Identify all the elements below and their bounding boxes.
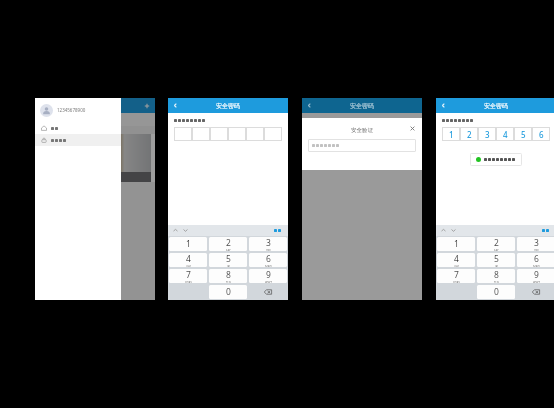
button[interactable]: Backspace: [517, 285, 554, 299]
staticText: DEF: [534, 249, 539, 251]
button[interactable]: Next field: [450, 227, 457, 234]
button[interactable]: 1: [169, 237, 207, 251]
staticText: 2: [494, 237, 499, 249]
button[interactable]: 6: [532, 127, 550, 141]
button[interactable]: Previous field: [440, 227, 447, 234]
button[interactable]: 1: [437, 237, 475, 251]
button[interactable]: 9: [517, 269, 554, 283]
staticText: 4: [186, 253, 191, 265]
staticText: 2: [226, 237, 231, 249]
staticText: 安全密码: [350, 102, 374, 110]
staticText: 0: [226, 286, 231, 298]
button[interactable]: 0: [209, 285, 247, 299]
staticText: MNO: [265, 265, 272, 267]
staticText: 4: [454, 253, 459, 265]
staticText: WXYZ: [265, 281, 272, 283]
button[interactable]: 2: [477, 237, 515, 251]
button[interactable]: Back: [302, 98, 316, 113]
staticText: 0: [494, 286, 499, 298]
button[interactable]: Back: [168, 98, 182, 113]
button[interactable]: 8: [209, 269, 247, 283]
button[interactable]: 4: [437, 253, 475, 267]
button[interactable]: [264, 127, 282, 141]
button[interactable]: Next field: [182, 227, 189, 234]
staticText: TUV: [494, 281, 499, 283]
button[interactable]: [540, 228, 552, 233]
staticText: WXYZ: [533, 281, 540, 283]
button[interactable]: 6: [517, 253, 554, 267]
staticText: 安全验证: [351, 127, 373, 134]
staticText: 3: [266, 237, 271, 249]
staticText: TUV: [226, 281, 231, 283]
button[interactable]: 4: [496, 127, 514, 141]
button[interactable]: 9: [249, 269, 287, 283]
staticText: 12345678900: [57, 107, 86, 113]
staticText: 1: [454, 238, 459, 250]
staticText: ABC: [494, 249, 499, 251]
button[interactable]: [308, 139, 416, 152]
staticText: GHI: [454, 265, 459, 267]
button[interactable]: [228, 127, 246, 141]
button[interactable]: Backspace: [249, 285, 287, 299]
button[interactable]: 8: [477, 269, 515, 283]
button[interactable]: [246, 127, 264, 141]
staticText: 6: [539, 129, 544, 140]
button[interactable]: Close: [408, 124, 417, 133]
staticText: MNO: [533, 265, 540, 267]
button[interactable]: Previous field: [172, 227, 179, 234]
button[interactable]: 3: [478, 127, 496, 141]
staticText: ABC: [226, 249, 231, 251]
button[interactable]: 6: [249, 253, 287, 267]
button[interactable]: 3: [517, 237, 554, 251]
button[interactable]: [35, 122, 121, 134]
staticText: PQRS: [185, 281, 192, 283]
staticText: 2: [467, 129, 472, 140]
staticText: 8: [226, 269, 231, 281]
button[interactable]: 2: [460, 127, 478, 141]
button[interactable]: 7: [169, 269, 207, 283]
button[interactable]: [272, 228, 284, 233]
staticText: 1: [449, 129, 454, 140]
button[interactable]: 4: [169, 253, 207, 267]
staticText: PQRS: [453, 281, 460, 283]
staticText: 6: [534, 253, 539, 265]
staticText: JKL: [495, 265, 499, 267]
staticText: 1: [186, 238, 191, 250]
button[interactable]: 0: [477, 285, 515, 299]
staticText: GHI: [186, 265, 191, 267]
staticText: 7: [186, 269, 191, 281]
staticText: 9: [534, 269, 539, 281]
staticText: 安全密码: [484, 102, 508, 110]
button[interactable]: 3: [249, 237, 287, 251]
button[interactable]: 5: [477, 253, 515, 267]
staticText: 9: [266, 269, 271, 281]
button[interactable]: Add: [143, 102, 151, 110]
staticText: JKL: [227, 265, 231, 267]
staticText: 3: [485, 129, 490, 140]
button[interactable]: 1: [442, 127, 460, 141]
button[interactable]: [35, 134, 121, 146]
staticText: 5: [521, 129, 526, 140]
staticText: DEF: [266, 249, 271, 251]
button[interactable]: 7: [437, 269, 475, 283]
button[interactable]: [105, 134, 151, 182]
button[interactable]: 5: [514, 127, 532, 141]
button[interactable]: 2: [209, 237, 247, 251]
staticText: 5: [494, 253, 499, 265]
button[interactable]: [192, 127, 210, 141]
button[interactable]: [210, 127, 228, 141]
staticText: 6: [266, 253, 271, 265]
button[interactable]: Back: [436, 98, 450, 113]
staticText: 安全密码: [216, 102, 240, 110]
button[interactable]: 5: [209, 253, 247, 267]
staticText: 7: [454, 269, 459, 281]
staticText: 3: [534, 237, 539, 249]
staticText: 8: [494, 269, 499, 281]
button[interactable]: [174, 127, 192, 141]
staticText: 4: [503, 129, 508, 140]
staticText: 5: [226, 253, 231, 265]
